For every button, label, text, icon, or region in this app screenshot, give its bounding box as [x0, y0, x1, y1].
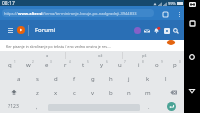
- staticText: u: [118, 61, 122, 69]
- staticText: 08:17: [2, 0, 15, 7]
- staticText: Ker pisanje in skroliranje po tekstu / e…: [6, 44, 111, 49]
- button[interactable]: w: [19, 58, 37, 71]
- button[interactable]: a: [30, 52, 64, 59]
- staticText: 9: [161, 60, 163, 64]
- staticText: b: [109, 89, 113, 97]
- staticText: Forumi: [35, 26, 56, 34]
- staticText: n: [127, 89, 131, 97]
- button[interactable]: Notifications: [152, 26, 161, 35]
- button[interactable]: f: [65, 72, 83, 85]
- button[interactable]: More options: [176, 10, 183, 19]
- button[interactable]: e: [38, 58, 56, 71]
- staticText: x: [54, 89, 58, 97]
- staticText: o: [155, 61, 159, 69]
- staticText: g: [91, 75, 95, 83]
- staticText: 99%: [168, 1, 176, 6]
- button[interactable]: Search: [171, 26, 180, 35]
- button[interactable]: c: [65, 86, 83, 99]
- button[interactable]: u: [111, 58, 129, 71]
- staticText: t: [82, 61, 85, 69]
- button[interactable]: h: [102, 72, 120, 85]
- staticText: ?123: [8, 103, 19, 110]
- staticText: q: [8, 61, 12, 69]
- button[interactable]: d: [47, 72, 65, 85]
- button[interactable]: Messages: [142, 26, 151, 35]
- button[interactable]: i: [130, 58, 148, 71]
- staticText: v: [91, 89, 95, 97]
- staticText: c: [73, 89, 76, 97]
- staticText: 0: [179, 60, 181, 64]
- button[interactable]: n: [120, 86, 138, 99]
- staticText: .: [148, 103, 150, 110]
- staticText: 4: [69, 60, 71, 64]
- button[interactable]: s: [28, 72, 46, 85]
- staticText: ož: [98, 53, 103, 58]
- staticText: 2: [32, 60, 34, 64]
- button[interactable]: .: [143, 100, 155, 112]
- staticText: 1: [14, 60, 16, 64]
- staticText: 3: [50, 60, 52, 64]
- staticText: r: [64, 61, 67, 69]
- staticText: s: [36, 75, 39, 83]
- button[interactable]: Alter logo: [17, 26, 25, 34]
- button[interactable]: Home: [184, 40, 200, 74]
- button[interactable]: g: [84, 72, 102, 85]
- button[interactable]: Backspace: [167, 86, 180, 98]
- button[interactable]: Alerts: [162, 26, 171, 35]
- button[interactable]: Profile: [133, 26, 142, 35]
- staticText: z: [36, 89, 39, 97]
- staticText: www.alter.si: [18, 11, 43, 16]
- staticText: pš: [142, 53, 147, 58]
- button[interactable]: t: [74, 58, 92, 71]
- button[interactable]: ,: [31, 100, 43, 112]
- button[interactable]: l: [157, 72, 175, 85]
- button[interactable]: o: [148, 58, 166, 71]
- staticText: a: [46, 53, 49, 58]
- staticText: ,: [36, 103, 38, 110]
- staticText: y: [100, 61, 104, 69]
- button[interactable]: ?123: [3, 100, 23, 112]
- button[interactable]: j: [120, 72, 138, 85]
- button[interactable]: Menu: [6, 26, 14, 34]
- staticText: 5: [87, 60, 89, 64]
- staticText: f: [73, 75, 76, 83]
- button[interactable]: m: [139, 86, 157, 99]
- staticText: l: [165, 75, 167, 83]
- button[interactable]: p: [166, 58, 184, 71]
- staticText: j: [128, 75, 130, 83]
- staticText: w: [26, 61, 31, 69]
- staticText: 7: [124, 60, 126, 64]
- staticText: p: [173, 61, 177, 69]
- button[interactable]: ož: [80, 52, 120, 59]
- button[interactable]: y: [93, 58, 111, 71]
- button[interactable]: x: [47, 86, 65, 99]
- staticText: https://: [4, 11, 18, 16]
- staticText: k: [146, 75, 150, 83]
- button[interactable]: Recents: [184, 6, 200, 40]
- button[interactable]: Shift: [7, 86, 20, 98]
- staticText: m: [145, 89, 151, 97]
- button[interactable]: k: [139, 72, 157, 85]
- button[interactable]: Back: [184, 74, 200, 108]
- staticText: /tema/terminiranje-locuje-po-nadgradnji-…: [43, 11, 137, 16]
- staticText: d: [54, 75, 58, 83]
- button[interactable]: q: [1, 58, 19, 71]
- staticText: h: [109, 75, 113, 83]
- staticText: a: [17, 75, 21, 83]
- button[interactable]: https://: [2, 9, 154, 17]
- button[interactable]: Enter: [167, 102, 176, 111]
- staticText: 8: [142, 60, 144, 64]
- button[interactable]: z: [28, 86, 46, 99]
- staticText: 6: [106, 60, 108, 64]
- button[interactable]: Tabs: [161, 10, 170, 19]
- staticText: i: [138, 61, 140, 69]
- button[interactable]: pš: [126, 52, 162, 59]
- button[interactable]: v: [84, 86, 102, 99]
- button[interactable]: r: [56, 58, 74, 71]
- button[interactable]: a: [10, 72, 28, 85]
- staticText: e: [45, 61, 49, 69]
- button[interactable]: b: [102, 86, 120, 99]
